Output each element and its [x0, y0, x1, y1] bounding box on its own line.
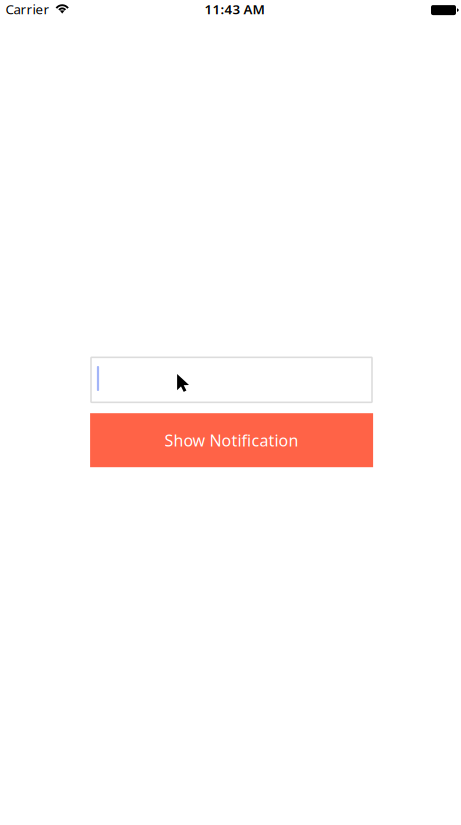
staticText: Show Notification: [165, 430, 299, 451]
staticText: Carrier: [5, 0, 49, 18]
staticText: 11:43 AM: [204, 0, 264, 18]
button[interactable]: Notification message: [91, 357, 372, 402]
button[interactable]: Show Notification: [90, 413, 373, 467]
